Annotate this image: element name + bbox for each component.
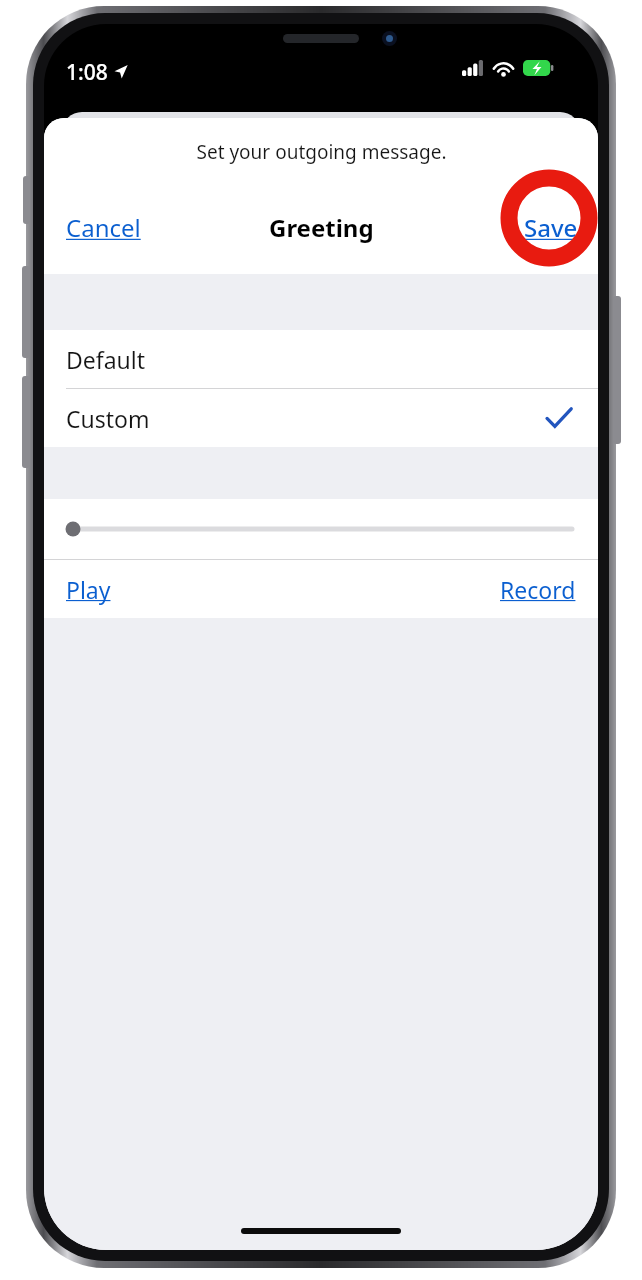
button[interactable]: Play <box>44 560 133 618</box>
staticText: 1:08 <box>66 58 108 87</box>
button[interactable]: Record <box>478 560 598 618</box>
staticText: Greeting <box>269 211 374 244</box>
staticText: Record <box>500 574 576 605</box>
staticText: Play <box>66 574 111 605</box>
staticText: Set your outgoing message. <box>196 139 447 165</box>
button[interactable]: Default <box>44 330 598 388</box>
other: Selected <box>546 407 572 429</box>
staticText: Save <box>524 211 578 244</box>
button[interactable]: Custom <box>44 389 598 447</box>
button[interactable]: Cancel <box>44 180 163 274</box>
staticText: Cancel <box>66 211 141 244</box>
button[interactable] <box>66 519 576 539</box>
staticText: Default <box>66 344 146 375</box>
staticText: Custom <box>66 403 150 434</box>
button[interactable]: Save <box>504 180 598 274</box>
